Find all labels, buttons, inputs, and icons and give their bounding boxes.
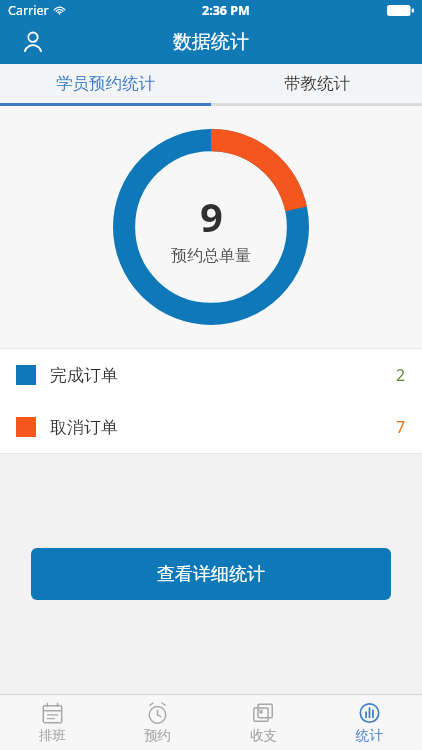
- button[interactable]: 排班: [0, 695, 105, 750]
- staticText: 2: [396, 364, 406, 386]
- staticText: 9: [200, 189, 223, 243]
- staticText: 7: [396, 416, 406, 438]
- staticText: 排班: [39, 727, 66, 744]
- staticText: 2:36 PM: [202, 2, 250, 19]
- button[interactable]: 预约: [105, 695, 210, 750]
- button[interactable]: 完成订单: [0, 349, 422, 401]
- staticText: 带教统计: [284, 73, 350, 94]
- staticText: 完成订单: [50, 365, 118, 386]
- button[interactable]: 学员预约统计: [0, 64, 211, 103]
- staticText: 取消订单: [50, 417, 118, 438]
- staticText: 预约: [144, 727, 171, 744]
- button[interactable]: 收支: [210, 695, 316, 750]
- button[interactable]: Profile: [14, 23, 52, 61]
- button[interactable]: 统计: [316, 695, 422, 750]
- staticText: 学员预约统计: [56, 73, 155, 94]
- staticText: 收支: [250, 727, 277, 744]
- button[interactable]: 带教统计: [211, 64, 422, 103]
- staticText: 预约总单量: [171, 246, 251, 266]
- staticText: 查看详细统计: [157, 563, 265, 586]
- staticText: 数据统计: [173, 30, 249, 54]
- staticText: 统计: [356, 727, 383, 744]
- button[interactable]: 查看详细统计: [31, 548, 391, 600]
- button[interactable]: 取消订单: [0, 401, 422, 453]
- staticText: Carrier: [8, 2, 49, 19]
